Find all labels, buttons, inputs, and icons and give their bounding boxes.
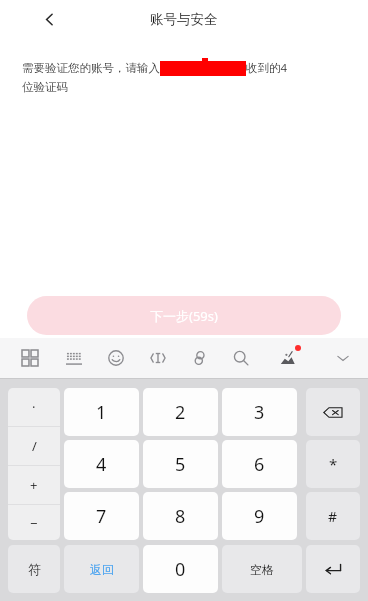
button[interactable]: 5 bbox=[143, 440, 218, 488]
button[interactable]: 1 bbox=[64, 388, 139, 436]
staticText: 5 bbox=[175, 452, 186, 477]
staticText: * bbox=[329, 454, 338, 474]
button[interactable]: 7 bbox=[64, 492, 139, 540]
button[interactable]: 2 bbox=[143, 388, 218, 436]
button[interactable]: 6 bbox=[222, 440, 297, 488]
staticText: 收到的4 bbox=[246, 60, 288, 76]
button[interactable]: 3 bbox=[222, 388, 297, 436]
button[interactable]: 0 bbox=[143, 545, 218, 593]
staticText: 9 bbox=[254, 504, 265, 529]
staticText: 空格 bbox=[250, 562, 274, 577]
button[interactable]: 9 bbox=[222, 492, 297, 540]
button[interactable]: Themes bbox=[273, 343, 303, 373]
staticText: # bbox=[328, 507, 338, 526]
staticText: 2 bbox=[175, 400, 186, 425]
button[interactable]: 下一步(59s) bbox=[27, 296, 341, 335]
button[interactable]: Apps bbox=[15, 343, 45, 373]
button[interactable]: Enter bbox=[306, 545, 360, 593]
staticText: 需要验证您的账号，请输入 bbox=[22, 61, 160, 75]
staticText: 账号与安全 bbox=[150, 11, 218, 28]
button[interactable]: Clipboard bbox=[185, 343, 215, 373]
button[interactable]: * bbox=[306, 440, 360, 488]
button[interactable]: # bbox=[306, 492, 360, 540]
staticText: 6 bbox=[254, 452, 265, 477]
staticText: · bbox=[32, 398, 36, 416]
staticText: 7 bbox=[96, 504, 107, 529]
staticText: − bbox=[30, 514, 38, 532]
staticText: + bbox=[30, 476, 38, 494]
button[interactable]: + bbox=[8, 466, 60, 504]
staticText: 4 bbox=[96, 452, 107, 477]
staticText: 下一步(59s) bbox=[150, 307, 218, 325]
button[interactable]: Search bbox=[226, 343, 256, 373]
staticText: 符 bbox=[28, 561, 41, 577]
staticText: 位验证码 bbox=[22, 80, 68, 94]
button[interactable]: 符 bbox=[8, 545, 60, 593]
staticText: / bbox=[32, 437, 37, 455]
staticText: 返回 bbox=[90, 562, 114, 577]
staticText: 0 bbox=[175, 557, 186, 582]
button[interactable]: 8 bbox=[143, 492, 218, 540]
staticText: 3 bbox=[254, 400, 265, 425]
button[interactable]: Backspace bbox=[306, 388, 360, 436]
staticText: 1 bbox=[96, 400, 107, 425]
button[interactable]: Emoji bbox=[101, 343, 131, 373]
button[interactable]: Keyboard layout bbox=[59, 343, 89, 373]
button[interactable]: Hide keyboard bbox=[328, 343, 358, 373]
button[interactable]: − bbox=[8, 505, 60, 540]
button[interactable]: 4 bbox=[64, 440, 139, 488]
button[interactable]: · bbox=[8, 388, 60, 426]
staticText: 8 bbox=[175, 504, 186, 529]
button[interactable]: Back bbox=[34, 4, 64, 34]
button[interactable]: Text editing bbox=[143, 343, 173, 373]
button[interactable]: / bbox=[8, 427, 60, 465]
button[interactable]: 空格 bbox=[222, 545, 302, 593]
button[interactable]: 返回 bbox=[64, 545, 139, 593]
